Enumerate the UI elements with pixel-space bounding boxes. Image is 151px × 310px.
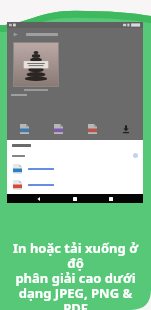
button[interactable]: Download JPG xyxy=(13,164,22,174)
button[interactable]: Download JPG xyxy=(7,162,143,175)
button[interactable]: Recent apps xyxy=(107,195,115,203)
button[interactable]: PDF xyxy=(88,124,97,134)
button[interactable]: Back xyxy=(35,195,43,203)
button[interactable]: Download PDF xyxy=(13,180,22,190)
button[interactable] xyxy=(14,43,58,86)
staticText: In hoặc tải xuống ở độ phân giải cao dướ… xyxy=(10,239,141,310)
button[interactable]: JPG xyxy=(20,124,29,134)
button[interactable]: Info xyxy=(133,153,138,158)
button[interactable]: PNG xyxy=(54,124,63,134)
button[interactable]: Download xyxy=(120,123,132,135)
button[interactable]: Home xyxy=(71,195,79,203)
button[interactable]: Back xyxy=(11,30,20,39)
button[interactable]: Download PDF xyxy=(7,178,143,191)
